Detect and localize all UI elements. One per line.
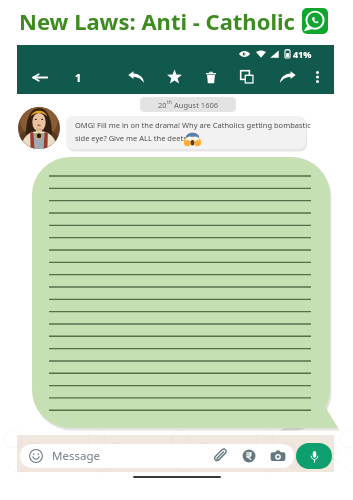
button[interactable]: Message bbox=[20, 444, 294, 468]
staticText: August 1606 bbox=[172, 100, 219, 110]
staticText: 1 bbox=[75, 70, 82, 85]
staticText: th bbox=[167, 99, 172, 106]
button[interactable]: Forward bbox=[275, 64, 301, 90]
staticText: OMG! Fill me in on the drama! Why are Ca… bbox=[75, 120, 311, 143]
button[interactable]: Voice message bbox=[296, 443, 332, 469]
staticText: New Laws: Anti - Catholic bbox=[19, 6, 295, 36]
staticText: Message bbox=[52, 448, 100, 464]
button[interactable]: Star bbox=[161, 64, 187, 90]
button[interactable]: Camera bbox=[267, 445, 289, 467]
staticText: 41% bbox=[293, 48, 312, 59]
button[interactable]: Payment bbox=[238, 445, 260, 467]
button[interactable]: Attach bbox=[209, 445, 231, 467]
button[interactable]: WhatsApp bbox=[302, 8, 328, 34]
button[interactable]: Delete bbox=[198, 64, 224, 90]
button[interactable]: Reply bbox=[123, 64, 149, 90]
button[interactable]: Back bbox=[27, 64, 53, 90]
button[interactable]: More options bbox=[304, 64, 330, 90]
button[interactable]: Copy bbox=[234, 64, 260, 90]
staticText: 20 bbox=[158, 100, 167, 110]
button[interactable]: Contact photo bbox=[18, 107, 60, 149]
